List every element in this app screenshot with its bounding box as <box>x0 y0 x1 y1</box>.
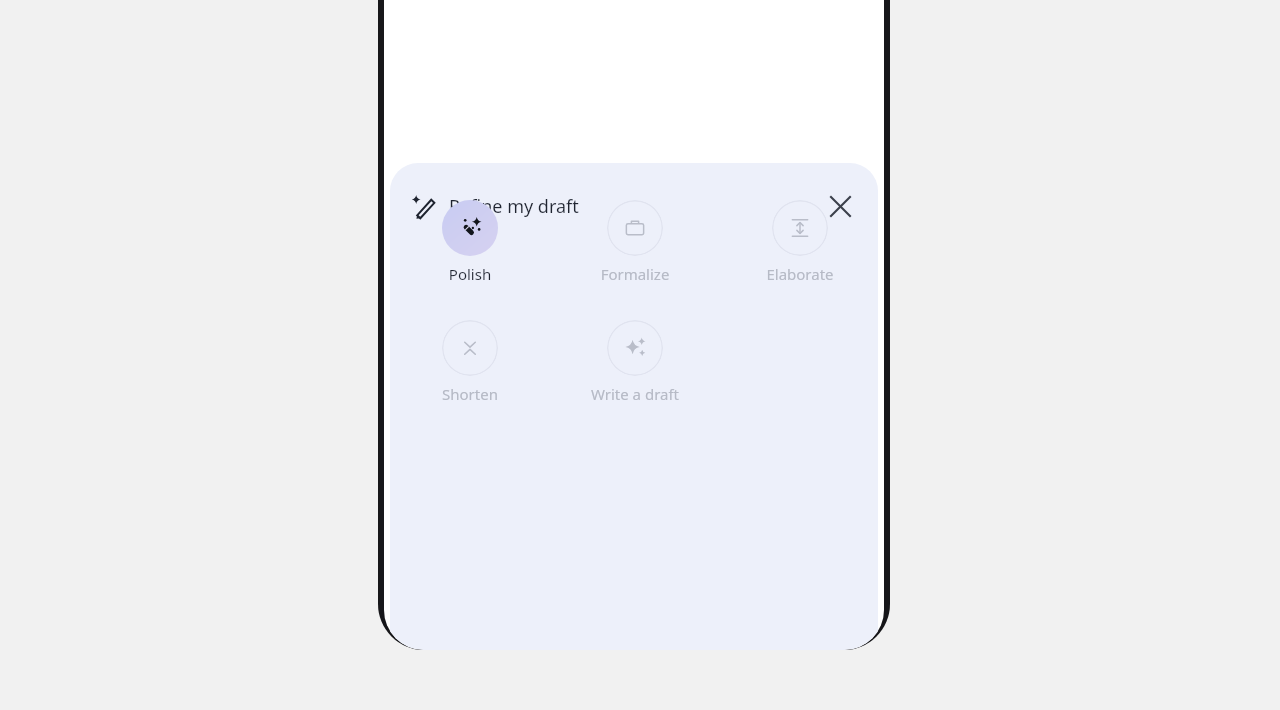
staticText: Write a draft <box>567 384 703 404</box>
staticText: Elaborate <box>732 264 868 284</box>
staticText: Formalize <box>567 264 703 284</box>
button[interactable]: Shorten <box>402 320 538 404</box>
staticText: Refine my draft <box>449 194 579 219</box>
button[interactable]: Write a draft <box>567 320 703 404</box>
staticText: Polish <box>402 264 538 284</box>
button[interactable]: Elaborate <box>732 200 868 284</box>
staticText: Shorten <box>402 384 538 404</box>
button[interactable]: Close <box>822 188 858 224</box>
button[interactable]: Formalize <box>567 200 703 284</box>
button[interactable]: Polish <box>402 200 538 284</box>
